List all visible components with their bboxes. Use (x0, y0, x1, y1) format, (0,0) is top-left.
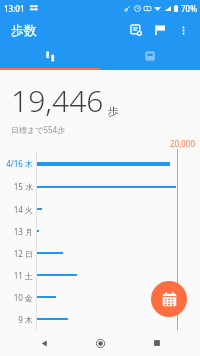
staticText: 19,446 (11, 80, 104, 121)
button[interactable]: カレンダー (151, 281, 187, 317)
button[interactable]: 9 木 (0, 308, 200, 330)
staticText: 9 木 (0, 314, 33, 325)
button[interactable]: メモを追加 (124, 18, 148, 42)
staticText: 歩 (108, 104, 119, 118)
button[interactable]: 最近のアプリ (144, 330, 170, 356)
staticText: 70% (181, 3, 197, 14)
button[interactable]: 12 日 (0, 242, 200, 264)
button[interactable]: 13 月 (0, 220, 200, 242)
staticText: 15 水 (0, 181, 33, 192)
button[interactable]: 目標 (148, 18, 172, 42)
staticText: 12 日 (0, 248, 33, 259)
button[interactable]: その他のオプション (172, 19, 194, 41)
button[interactable]: 14 火 (0, 198, 200, 220)
staticText: 11 土 (0, 270, 33, 281)
button[interactable]: 戻る (31, 330, 57, 356)
staticText: 13:01 (4, 3, 25, 14)
staticText: 4/16 木 (0, 158, 33, 169)
button[interactable]: 15 水 (0, 175, 200, 198)
button[interactable]: ホーム (87, 330, 113, 356)
staticText: 目標まで554歩 (11, 124, 66, 135)
button[interactable]: 4/16 木 (0, 152, 200, 175)
staticText: 13 月 (0, 226, 33, 237)
staticText: 14 火 (0, 204, 33, 215)
button[interactable]: 体重タブ (100, 44, 200, 70)
staticText: 10 金 (0, 292, 33, 303)
button[interactable]: 歩数タブ (0, 44, 100, 70)
button[interactable]: 10 金 (0, 286, 200, 308)
staticText: 20,000 (170, 138, 196, 149)
staticText: 歩数 (11, 22, 37, 38)
button[interactable]: 11 土 (0, 264, 200, 286)
